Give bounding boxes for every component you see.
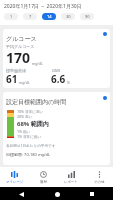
button[interactable]: レポート xyxy=(57,167,85,187)
staticText: 7 xyxy=(29,14,32,19)
staticText: マイレージ xyxy=(6,180,24,184)
staticText: その他 xyxy=(94,180,105,184)
staticText: 6.6 xyxy=(51,72,66,86)
staticText: 10% 非常に高い xyxy=(17,109,44,114)
button[interactable]: 詳細情報 xyxy=(101,30,109,38)
staticText: 68% 範囲内 xyxy=(17,120,49,128)
staticText: 各目標は1日あたりの平均です xyxy=(6,143,56,148)
staticText: % xyxy=(66,80,70,85)
staticText: グルコース xyxy=(6,35,37,43)
button[interactable]: 7 xyxy=(23,13,37,20)
button[interactable]: 30 xyxy=(61,13,75,20)
staticText: mg/dL xyxy=(18,80,30,85)
button[interactable]: 詳細情報 xyxy=(101,94,109,102)
button[interactable]: 14 xyxy=(42,13,56,20)
button[interactable]: Back xyxy=(16,189,26,199)
staticText: 170 xyxy=(6,48,31,67)
button[interactable]: 1 xyxy=(4,13,18,20)
staticText: 目標範囲: 70-180 mg/dL xyxy=(6,152,51,157)
staticText: 1% 低い xyxy=(17,129,31,134)
staticText: mg/dL xyxy=(31,61,43,66)
staticText: 1 xyxy=(10,14,13,19)
staticText: 20% 高い xyxy=(17,114,33,119)
staticText: 30 xyxy=(66,14,71,19)
staticText: 設定目標範囲内の時間 xyxy=(6,98,67,106)
button[interactable]: Home xyxy=(52,189,62,199)
button[interactable]: Recent apps xyxy=(87,189,97,199)
button[interactable]: マイレージ xyxy=(0,167,29,187)
staticText: GMI xyxy=(52,68,60,73)
staticText: 61 xyxy=(6,72,18,86)
staticText: 2020年1月17日 ～ 2020年1月30日 xyxy=(4,3,82,10)
button[interactable]: 履歴 xyxy=(29,167,57,187)
staticText: 履歴 xyxy=(40,180,47,184)
staticText: 標準偏差値 xyxy=(6,68,26,73)
staticText: 平均グルコース xyxy=(6,44,35,49)
button[interactable]: 90 xyxy=(80,13,94,20)
staticText: 90 xyxy=(85,14,90,19)
staticText: レポート xyxy=(64,180,78,184)
staticText: 14 xyxy=(47,14,52,19)
button[interactable]: その他 xyxy=(85,167,113,187)
staticText: 1% 非常に低い xyxy=(17,134,42,139)
